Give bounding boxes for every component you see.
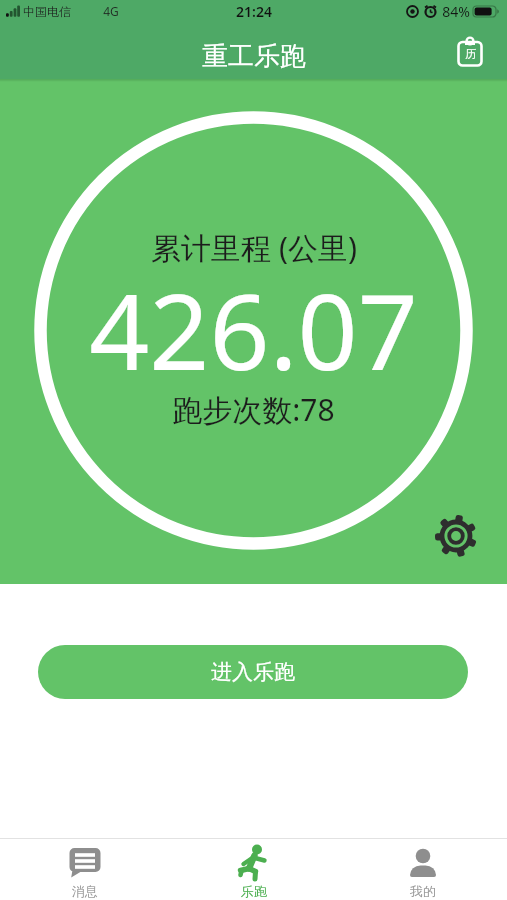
staticText: 累计里程 (公里) — [151, 227, 357, 268]
staticText: 进入乐跑 — [211, 659, 295, 685]
button[interactable]: 乐跑 — [169, 839, 338, 900]
staticText: 中国电信 — [23, 4, 71, 19]
button[interactable]: 历 — [454, 35, 486, 67]
button[interactable]: 我的 — [338, 839, 507, 900]
staticText: 重工乐跑 — [202, 40, 306, 73]
staticText: 跑步次数:78 — [172, 389, 335, 430]
staticText: 21:24 — [236, 2, 272, 21]
staticText: 乐跑 — [241, 883, 267, 899]
staticText: 4G — [103, 3, 119, 19]
staticText: 历 — [465, 47, 476, 61]
button[interactable]: 消息 — [0, 839, 169, 900]
staticText: 消息 — [72, 883, 98, 899]
staticText: 426.07 — [89, 258, 418, 385]
staticText: 84% — [442, 2, 470, 21]
button[interactable]: 进入乐跑 — [38, 645, 468, 699]
staticText: 我的 — [410, 883, 436, 899]
